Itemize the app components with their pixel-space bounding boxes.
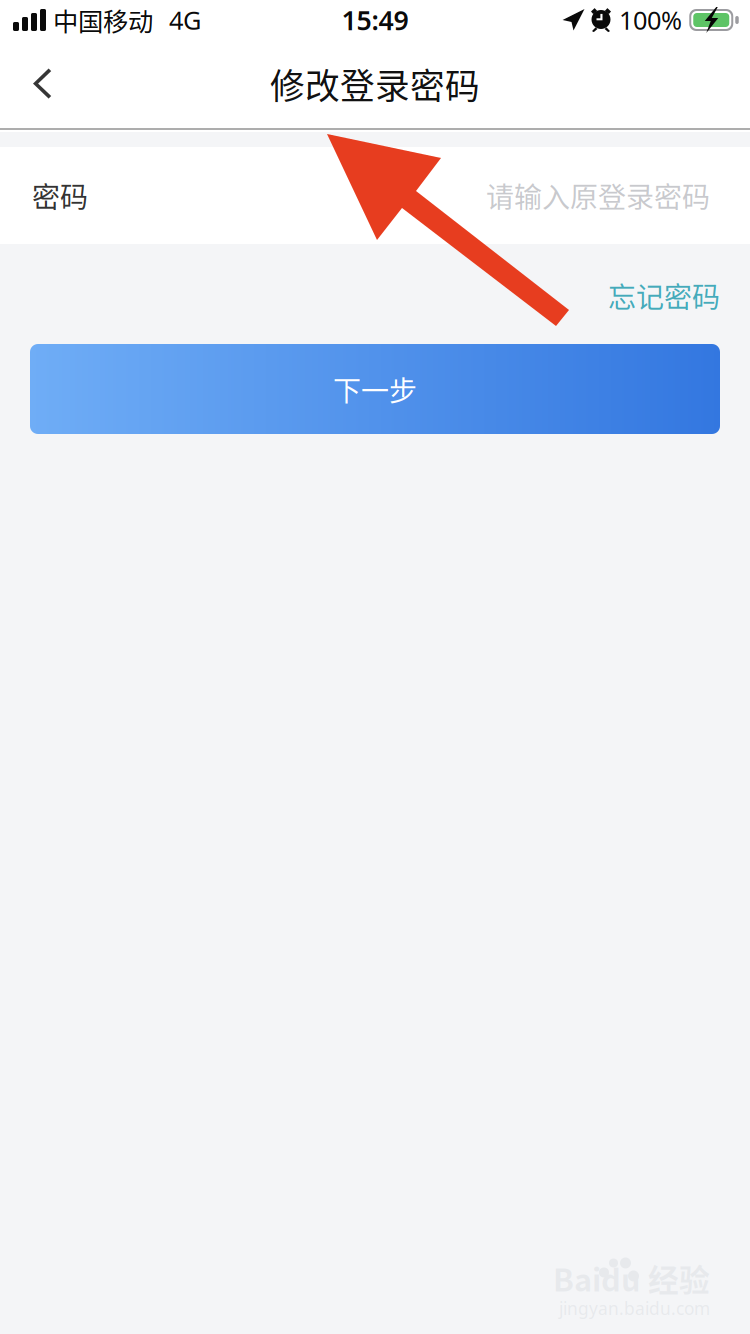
staticText: 密码 xyxy=(32,175,88,216)
staticText: 4G xyxy=(169,3,201,37)
staticText: jingyan.baidu.com xyxy=(559,1296,710,1320)
button[interactable]: 下一步 xyxy=(30,344,720,434)
staticText: 请输入原登录密码 xyxy=(486,175,710,216)
staticText: 15:49 xyxy=(341,2,408,38)
staticText: 下一步 xyxy=(333,369,417,409)
staticText: Baidu 经验 xyxy=(553,1256,710,1300)
staticText: 中国移动 xyxy=(53,2,153,38)
button[interactable]: 返回 xyxy=(0,40,84,128)
button[interactable]: 忘记密码 xyxy=(578,258,750,333)
staticText: 忘记密码 xyxy=(608,275,720,316)
staticText: 100% xyxy=(619,3,682,37)
staticText: 修改登录密码 xyxy=(270,59,480,109)
button[interactable]: 密码 xyxy=(0,147,750,244)
